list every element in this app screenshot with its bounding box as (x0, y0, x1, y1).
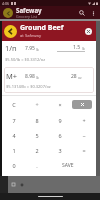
staticText: − (82, 132, 86, 139)
staticText: 7.95 (25, 45, 35, 52)
button[interactable]: Search (76, 7, 87, 18)
staticText: 8.98 (25, 73, 35, 80)
button[interactable]: 1 (2, 143, 25, 158)
staticText: . (36, 162, 38, 169)
button[interactable]: × (48, 96, 72, 112)
button[interactable]: 1/n (5, 43, 17, 53)
button[interactable]: − (72, 128, 96, 143)
staticText: = (82, 147, 86, 154)
button[interactable]: 3 (48, 143, 72, 158)
staticText: C (12, 101, 16, 108)
button[interactable]: ÷ (25, 96, 48, 112)
button[interactable]: Remove item (82, 25, 94, 37)
button[interactable]: Ground Beef (2, 21, 96, 41)
button[interactable]: 4 (2, 128, 25, 143)
button[interactable]: 2 (25, 143, 48, 158)
button[interactable]: 8 (25, 112, 48, 128)
staticText: lb (35, 75, 39, 80)
staticText: Grocery List (16, 14, 38, 19)
button[interactable]: M+ (4, 67, 94, 93)
staticText: lb (81, 46, 85, 51)
staticText: 0 (12, 162, 16, 169)
button[interactable]: 9 (48, 112, 72, 128)
staticText: 4:06 (2, 1, 10, 6)
staticText: 4 (12, 132, 16, 139)
staticText: M+ (6, 71, 18, 81)
button[interactable]: 5 (25, 128, 48, 143)
staticText: $5.1314/lb = $0.3207/oz (6, 84, 51, 89)
staticText: 2 (35, 147, 39, 154)
staticText: at Safeway (20, 33, 42, 39)
button[interactable]: + (72, 112, 96, 128)
button[interactable]: Recents (10, 181, 17, 188)
staticText: lb (35, 47, 39, 52)
staticText: Ground Beef (20, 23, 64, 33)
button[interactable]: 7 (2, 112, 25, 128)
staticText: oz (77, 75, 82, 80)
staticText: 5 (35, 132, 39, 139)
staticText: SAVE (62, 162, 74, 169)
staticText: 9 (58, 117, 62, 124)
button[interactable]: Back (3, 8, 13, 18)
button[interactable]: 0 (2, 158, 25, 173)
button[interactable]: C (2, 96, 25, 112)
button[interactable]: Home (18, 181, 25, 188)
staticText: 1/n (5, 43, 17, 53)
button[interactable]: More options (89, 9, 97, 17)
button[interactable]: Backspace (72, 96, 96, 112)
staticText: 1 (12, 147, 16, 154)
staticText: × (58, 101, 62, 108)
staticText: 6 (58, 132, 62, 139)
staticText: 28 (71, 73, 77, 80)
staticText: 3 (58, 147, 62, 154)
button[interactable]: SAVE (49, 158, 96, 173)
staticText: $5.50/lb = $0.3312/oz (5, 57, 46, 62)
button[interactable]: = (72, 143, 96, 158)
button[interactable]: 6 (48, 128, 72, 143)
staticText: 8 (35, 117, 39, 124)
staticText: Safeway (16, 6, 42, 14)
staticText: 1.5 (73, 44, 81, 51)
staticText: + (82, 117, 86, 124)
staticText: ÷ (35, 101, 39, 108)
staticText: 7 (12, 117, 16, 124)
